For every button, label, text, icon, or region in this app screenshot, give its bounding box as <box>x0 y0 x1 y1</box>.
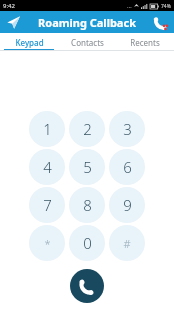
button[interactable]: 0 <box>69 225 105 261</box>
staticText: 9 <box>123 195 132 215</box>
staticText: 1 <box>43 119 52 139</box>
button[interactable]: Call history <box>151 13 170 32</box>
button[interactable]: Call <box>70 269 104 303</box>
button[interactable]: Recents <box>116 33 174 51</box>
staticText: 8 <box>83 195 92 215</box>
staticText: 7 <box>43 195 52 215</box>
button[interactable]: 2 <box>69 111 105 147</box>
button[interactable]: 8 <box>69 187 105 223</box>
button[interactable]: 9 <box>109 187 145 223</box>
staticText: Contacts <box>71 37 104 48</box>
staticText: 4 <box>43 157 52 177</box>
staticText: 3 <box>123 119 132 139</box>
staticText: # <box>123 236 131 251</box>
button[interactable]: * <box>29 225 65 261</box>
button[interactable]: Send <box>4 13 23 32</box>
button[interactable]: Keypad <box>0 33 58 51</box>
staticText: … <box>127 2 132 10</box>
staticText: Roaming Callback <box>38 15 136 30</box>
button[interactable]: 6 <box>109 149 145 185</box>
staticText: 9:42 <box>3 2 15 10</box>
staticText: 74% <box>161 3 171 10</box>
staticText: 5 <box>83 157 92 177</box>
staticText: 6 <box>123 157 132 177</box>
button[interactable]: 3 <box>109 111 145 147</box>
button[interactable]: # <box>109 225 145 261</box>
staticText: Keypad <box>15 37 44 48</box>
staticText: * <box>44 236 51 251</box>
button[interactable]: 4 <box>29 149 65 185</box>
button[interactable]: 7 <box>29 187 65 223</box>
button[interactable]: 1 <box>29 111 65 147</box>
staticText: 0 <box>83 233 92 253</box>
staticText: 2 <box>83 119 92 139</box>
button[interactable]: Contacts <box>58 33 116 51</box>
button[interactable]: 5 <box>69 149 105 185</box>
staticText: Recents <box>130 37 160 48</box>
